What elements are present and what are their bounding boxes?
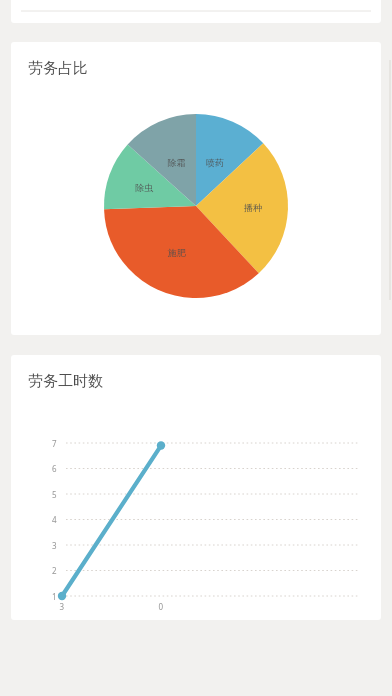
button[interactable] [11, 42, 381, 335]
button[interactable] [11, 0, 381, 23]
button[interactable] [11, 355, 381, 620]
